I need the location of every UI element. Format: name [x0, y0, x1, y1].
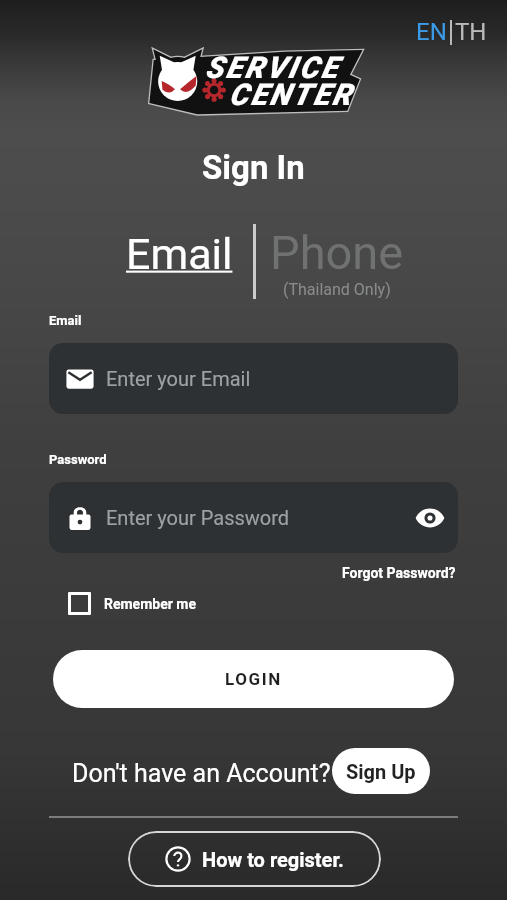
staticText: CENTER: [229, 77, 354, 112]
staticText: Don't have an Account?: [72, 759, 331, 788]
staticText: TH: [455, 18, 487, 46]
button[interactable]: Remember me: [60, 584, 205, 623]
button[interactable]: Email: [120, 229, 239, 279]
staticText: EN: [416, 18, 447, 46]
staticText: Password: [49, 452, 107, 467]
button[interactable]: Show password: [407, 495, 453, 541]
staticText: Enter your Password: [106, 506, 290, 529]
button[interactable]: Enter your Email: [49, 343, 458, 414]
staticText: Email: [49, 313, 82, 328]
staticText: How to register.: [202, 848, 344, 871]
staticText: Phone: [270, 225, 404, 280]
staticText: (Thailand Only): [283, 280, 391, 299]
button[interactable]: LOGIN: [53, 650, 454, 708]
staticText: Enter your Email: [106, 367, 251, 390]
staticText: Forgot Password?: [342, 565, 456, 581]
staticText: Sign Up: [346, 760, 416, 783]
staticText: LOGIN: [225, 669, 282, 689]
staticText: Remember me: [104, 596, 197, 612]
button[interactable]: EN: [414, 16, 489, 48]
button[interactable]: Enter your Password: [49, 482, 458, 553]
staticText: Sign In: [202, 148, 305, 187]
staticText: Email: [126, 229, 233, 279]
button[interactable]: Forgot Password?: [338, 561, 460, 585]
button[interactable]: Phone: [270, 225, 404, 299]
button[interactable]: Sign Up: [332, 748, 430, 794]
button[interactable]: How to register.: [128, 831, 381, 887]
staticText: SERVICE: [205, 50, 340, 85]
